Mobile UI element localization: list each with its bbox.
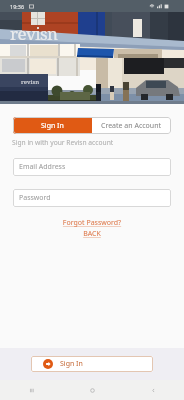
- staticText: Email Address: [19, 162, 66, 172]
- staticText: Password: [19, 193, 51, 203]
- button[interactable]: Email Address: [13, 158, 171, 176]
- button[interactable]: Home: [62, 380, 123, 400]
- staticText: Sign In: [60, 359, 83, 369]
- button[interactable]: Forgot Password?: [0, 218, 184, 228]
- button[interactable]: BACK: [0, 229, 184, 239]
- staticText: Create an Account: [101, 121, 162, 131]
- button[interactable]: Create an Account: [92, 117, 171, 134]
- button[interactable]: Sign In: [31, 356, 153, 372]
- staticText: 19:36: [10, 3, 25, 10]
- staticText: revisn: [21, 78, 40, 86]
- button[interactable]: Password: [13, 189, 171, 207]
- button[interactable]: Sign In: [13, 117, 92, 134]
- staticText: revisn: [10, 22, 58, 45]
- staticText: Sign in with your Revisn account: [12, 138, 114, 147]
- staticText: Sign In: [41, 121, 64, 131]
- button[interactable]: Recent apps: [0, 380, 62, 400]
